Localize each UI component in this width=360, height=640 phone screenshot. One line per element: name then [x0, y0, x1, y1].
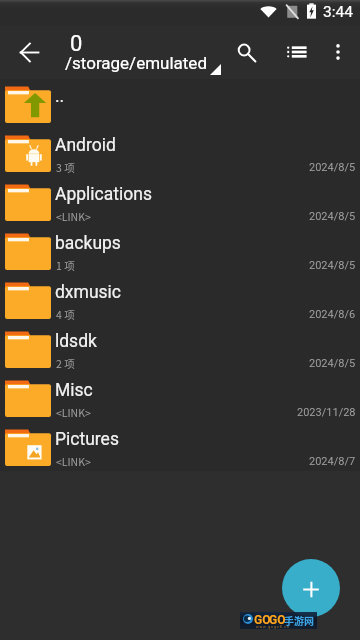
- staticText: 4 项: [56, 307, 75, 322]
- staticText: dxmusic: [55, 282, 121, 303]
- staticText: 2024/8/6: [309, 308, 356, 321]
- button[interactable]: Misc: [0, 373, 360, 422]
- staticText: Applications: [55, 184, 152, 205]
- button[interactable]: More options: [320, 34, 356, 70]
- staticText: 2023/11/28: [297, 406, 356, 419]
- staticText: 2024/8/7: [309, 455, 356, 468]
- button[interactable]: Add: [282, 559, 340, 617]
- staticText: 手游网: [284, 613, 314, 627]
- button[interactable]: Search: [228, 34, 264, 70]
- staticText: GO: [269, 613, 286, 627]
- staticText: 3:44: [323, 3, 353, 21]
- button[interactable]: dxmusic: [0, 275, 360, 324]
- staticText: 2024/8/5: [309, 161, 356, 174]
- staticText: ..: [55, 86, 65, 107]
- button[interactable]: Android: [0, 128, 360, 177]
- staticText: w w w . g o g o 8 . c n: [256, 625, 289, 629]
- button[interactable]: Back: [11, 34, 47, 70]
- staticText: Android: [55, 135, 116, 156]
- staticText: <LINK>: [56, 454, 91, 469]
- staticText: 2024/8/5: [309, 357, 356, 370]
- staticText: Pictures: [55, 429, 119, 450]
- button[interactable]: ..: [0, 79, 360, 128]
- staticText: 2024/8/5: [309, 259, 356, 272]
- staticText: 1 项: [56, 258, 75, 273]
- staticText: /storage/emulated: [65, 53, 207, 73]
- button[interactable]: Applications: [0, 177, 360, 226]
- staticText: <LINK>: [56, 405, 91, 420]
- staticText: <LINK>: [56, 209, 91, 224]
- button[interactable]: backups: [0, 226, 360, 275]
- button[interactable]: Pictures: [0, 422, 360, 471]
- button[interactable]: ldsdk: [0, 324, 360, 373]
- staticText: ldsdk: [55, 331, 97, 352]
- staticText: 3 项: [56, 160, 75, 175]
- staticText: backups: [55, 233, 121, 254]
- staticText: Misc: [55, 380, 93, 401]
- staticText: 2 项: [56, 356, 75, 371]
- staticText: GO: [254, 613, 271, 627]
- staticText: 2024/8/5: [309, 210, 356, 223]
- staticText: 0: [70, 31, 83, 57]
- button[interactable]: View mode: [279, 34, 315, 70]
